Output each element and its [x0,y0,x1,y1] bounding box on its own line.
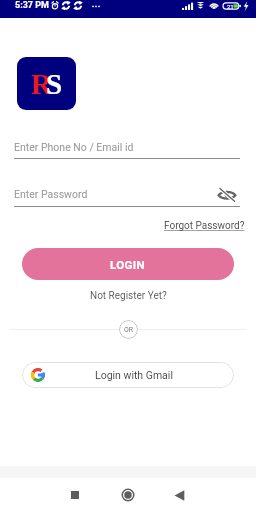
staticText: Not Register Yet? [90,290,167,302]
staticText: 5:37 PM [15,0,49,11]
button[interactable]: Back [167,482,193,508]
staticText: LOGIN [110,258,146,271]
button[interactable]: LOGIN [22,248,234,280]
staticText: R [31,68,52,100]
button[interactable]: Show password [218,185,240,203]
button[interactable]: Recents [62,482,88,508]
staticText: Enter Password [14,188,88,200]
button[interactable]: Login with Gmail [22,362,234,388]
button[interactable]: Home [115,482,141,508]
staticText: S [46,68,63,100]
staticText: Forgot Password? [164,220,245,232]
button[interactable]: Forgot Password? [164,220,245,232]
staticText: Enter Phone No / Email id [14,141,134,153]
staticText: 21 [227,3,234,10]
staticText: OR [124,326,134,334]
button[interactable]: Not Register Yet? [90,290,167,302]
staticText: Login with Gmail [95,369,173,381]
